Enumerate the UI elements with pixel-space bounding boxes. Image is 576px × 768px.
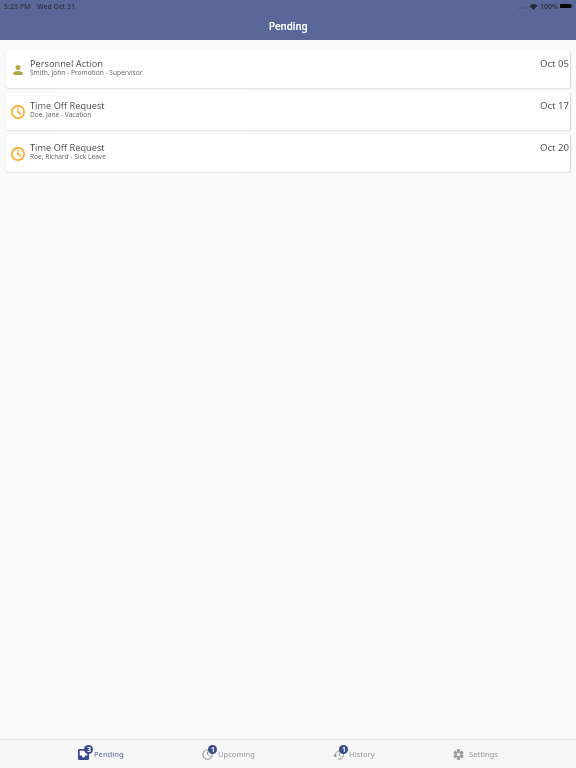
staticText: 5:23 PM [4, 2, 31, 12]
button[interactable]: 1 [333, 740, 375, 768]
staticText: Oct 17 [540, 99, 570, 112]
staticText: Smith, John - Promotion - Supervisor [30, 68, 143, 77]
button[interactable]: Personnel Action [6, 51, 570, 88]
staticText: Personnel Action [30, 57, 103, 70]
button[interactable]: Time Off Request [6, 135, 570, 172]
staticText: Upcoming [218, 749, 255, 759]
staticText: 3 [87, 745, 91, 754]
staticText: Time Off Request [30, 141, 105, 154]
staticText: Time Off Request [30, 99, 105, 112]
staticText: Wed Oct 31 [37, 2, 76, 12]
staticText: Doe, Jane - Vacation [30, 110, 92, 119]
staticText: Pending [269, 20, 308, 33]
button[interactable]: Time Off Request [6, 93, 570, 130]
staticText: 100% [540, 2, 558, 12]
staticText: Roe, Richard - Sick Leave [30, 152, 106, 161]
staticText: Settings [469, 749, 498, 759]
staticText: History [349, 749, 375, 759]
staticText: Oct 20 [540, 141, 570, 154]
staticText: Pending [94, 749, 124, 759]
button[interactable]: 1 [202, 740, 255, 768]
button[interactable]: 3 [78, 740, 124, 768]
staticText: Oct 05 [540, 57, 570, 70]
staticText: 1 [342, 745, 346, 754]
button[interactable]: Settings [453, 740, 498, 768]
staticText: 1 [211, 745, 215, 754]
